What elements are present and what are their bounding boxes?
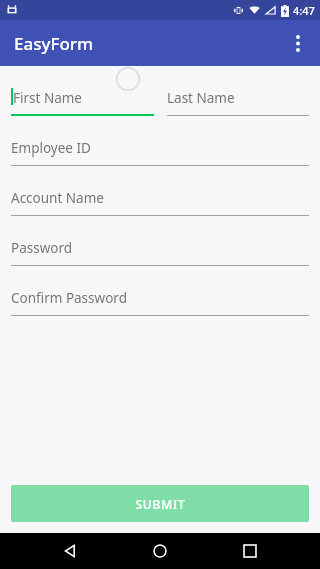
button[interactable]: Account Name: [11, 186, 309, 216]
button[interactable]: Back: [50, 533, 90, 569]
staticText: EasyForm: [14, 32, 94, 55]
button[interactable]: Confirm Password: [11, 286, 309, 316]
staticText: Confirm Password: [11, 289, 127, 307]
button[interactable]: SUBMIT: [11, 485, 309, 522]
staticText: Last Name: [167, 89, 235, 107]
staticText: Employee ID: [11, 139, 91, 157]
button[interactable]: Employee ID: [11, 136, 309, 166]
staticText: 4:47: [293, 3, 315, 18]
button[interactable]: Last Name: [167, 86, 309, 116]
staticText: Account Name: [11, 189, 104, 207]
button[interactable]: More options: [276, 21, 320, 65]
button[interactable]: First Name: [11, 86, 154, 116]
button[interactable]: Password: [11, 236, 309, 266]
staticText: SUBMIT: [135, 496, 186, 512]
button[interactable]: Home: [140, 533, 180, 569]
staticText: First Name: [13, 89, 82, 107]
button[interactable]: Recent apps: [230, 533, 270, 569]
staticText: Password: [11, 239, 73, 257]
